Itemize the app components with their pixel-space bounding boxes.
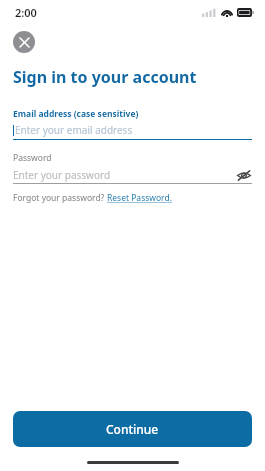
staticText: 2:00 [15,5,37,20]
staticText: Email address (case sensitive) [13,108,139,120]
staticText: Password [13,152,52,164]
staticText: Continue [106,421,159,437]
button[interactable]: Enter your password [13,167,252,183]
button[interactable]: Continue [13,411,252,447]
button[interactable]: Enter your email address [13,123,252,139]
staticText: Enter your email address [15,123,133,137]
staticText: Enter your password [13,168,236,182]
staticText: Sign in to your account [13,66,197,88]
staticText: Reset Password. [107,192,172,204]
staticText: Forgot your password? [13,192,107,204]
button[interactable]: Close [13,31,35,53]
button[interactable]: Reset Password. [107,192,172,204]
button[interactable]: Show password [236,168,252,182]
